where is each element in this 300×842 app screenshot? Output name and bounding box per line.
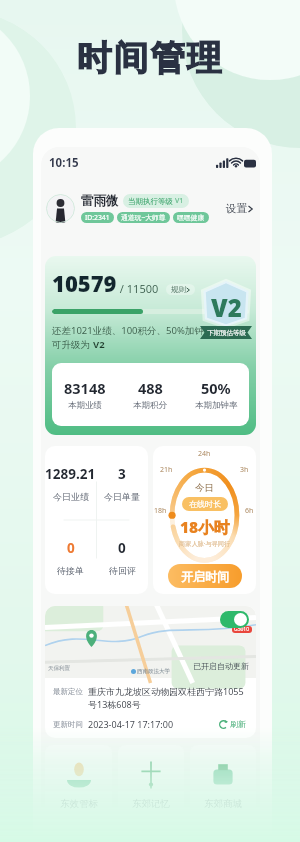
staticText: 0 [67,539,75,557]
staticText: 在线时长 [189,499,221,509]
button[interactable]: 东郊商城 [190,745,256,825]
staticText: 待回评 [109,565,136,576]
staticText: 2023-04-17 17:17:00 [88,718,174,730]
staticText: 东郊商城 [204,798,242,810]
staticText: 时间管理 [77,37,224,80]
staticText: 本期积分 [133,400,167,411]
staticText: 本期加钟率 [195,400,238,411]
staticText: 待接单 [57,565,84,576]
staticText: 可升级为 [52,338,93,351]
staticText: 今日 [195,482,214,494]
staticText: 1289.21 [45,465,96,483]
staticText: 最新定位 [53,687,83,696]
staticText: 0 [118,539,126,557]
staticText: V2 [93,338,105,351]
staticText: 10579 [52,268,117,298]
staticText: V1 [175,196,184,206]
staticText: V2 [211,291,242,324]
button[interactable]: 刷新 [217,717,248,731]
staticText: 天保利置 [48,665,70,672]
staticText: 24h [198,449,211,459]
staticText: 今日业绩 [53,491,89,502]
staticText: 通道玩~大师尊 [121,213,166,222]
staticText: 18小时 [180,516,230,537]
button[interactable]: 规则 [166,284,195,295]
staticText: 规则 [171,285,186,294]
staticText: ID:2341 [85,213,110,222]
staticText: / 11500 [117,281,159,296]
button[interactable]: 东效管标 [45,745,112,825]
button[interactable]: 东郊记忆 [118,745,184,825]
staticText: 东郊记忆 [132,798,170,810]
staticText: 下期预估等级 [207,329,246,337]
staticText: 西南政法大学 [137,668,170,675]
staticText: 开启时间 [181,569,229,584]
staticText: 83148 [64,378,106,398]
staticText: 嘿嘿健康 [177,213,205,222]
staticText: 更新时间 [53,720,83,729]
button[interactable]: 开启时间 [168,564,242,588]
staticText: 还差1021业绩、100积分、50%加钟率 [52,324,214,337]
staticText: 3 [118,465,126,483]
staticText: 本期业绩 [68,400,102,411]
staticText: 今日单量 [104,491,140,502]
staticText: 18h [154,506,167,516]
staticText: G5010 [234,626,250,633]
staticText: 21h [160,465,173,475]
button[interactable]: 自动更新开关 [220,611,249,628]
staticText: 3h [240,465,249,475]
staticText: 刷新 [230,719,246,729]
staticText: 6h [245,506,254,516]
staticText: 50% [201,378,231,398]
button[interactable]: 设置 [224,196,255,221]
staticText: 设置 [226,202,247,215]
staticText: 488 [138,378,163,398]
staticText: 已开启自动更新 [193,661,249,671]
staticText: 商家人脉·与寻同行 [179,539,231,547]
staticText: 当期执行等级 [128,197,173,206]
staticText: 东效管标 [60,798,98,810]
staticText: 雷雨微 [81,193,119,209]
staticText: 10:15 [49,155,79,171]
staticText: 重庆市九龙坡区动物园双桂西宁路1055号13栋608号 [88,685,248,711]
